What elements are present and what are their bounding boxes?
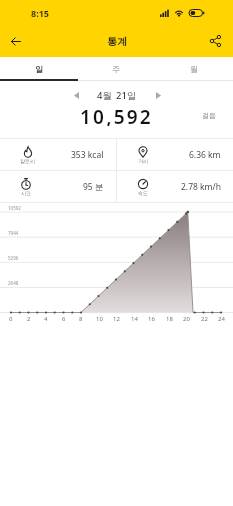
staticText: 10592 xyxy=(8,205,21,211)
staticText: 8:15 xyxy=(31,7,49,19)
staticText: 0 xyxy=(9,315,13,323)
staticText: 22 xyxy=(201,315,208,323)
staticText: 10,592 xyxy=(80,104,153,126)
staticText: 8 xyxy=(79,315,83,323)
staticText: 21일 xyxy=(116,89,137,102)
staticText: 월 xyxy=(190,64,198,74)
staticText: 6.36 km xyxy=(189,149,221,161)
staticText: 14 xyxy=(131,315,138,323)
staticText: 95 분 xyxy=(83,181,104,193)
staticText: 칼로리 xyxy=(20,158,35,164)
staticText: 6 xyxy=(62,315,66,323)
button[interactable]: 칼로리 xyxy=(0,139,116,170)
staticText: 일 xyxy=(35,64,43,74)
staticText: 24 xyxy=(218,315,225,323)
staticText: 거리 xyxy=(138,158,148,164)
button[interactable]: 거리 xyxy=(117,139,233,170)
staticText: 353 kcal xyxy=(71,149,104,161)
staticText: 4 xyxy=(44,315,48,323)
staticText: 7944 xyxy=(8,230,19,236)
button[interactable] xyxy=(68,87,84,103)
staticText: 2648 xyxy=(8,280,19,286)
button[interactable] xyxy=(5,30,27,52)
staticText: 10 xyxy=(96,315,103,323)
button[interactable]: 주 xyxy=(77,57,155,81)
staticText: 2.78 km/h xyxy=(181,181,221,193)
button[interactable] xyxy=(204,30,226,52)
staticText: 속도 xyxy=(138,190,148,196)
button[interactable]: 일 xyxy=(0,57,77,81)
staticText: 16 xyxy=(148,315,155,323)
staticText: 통계 xyxy=(107,35,127,48)
button[interactable] xyxy=(150,87,166,103)
staticText: 2 xyxy=(27,315,31,323)
staticText: 18 xyxy=(166,315,173,323)
staticText: 4월 xyxy=(97,89,112,102)
button[interactable]: 시간 xyxy=(0,171,116,202)
staticText: 5296 xyxy=(8,255,19,261)
staticText: 걸음 xyxy=(202,111,216,120)
staticText: 12 xyxy=(113,315,120,323)
button[interactable]: 월 xyxy=(155,57,233,81)
button[interactable]: 속도 xyxy=(117,171,233,202)
staticText: 시간 xyxy=(21,190,31,196)
staticText: 주 xyxy=(112,64,120,74)
staticText: 20 xyxy=(183,315,190,323)
